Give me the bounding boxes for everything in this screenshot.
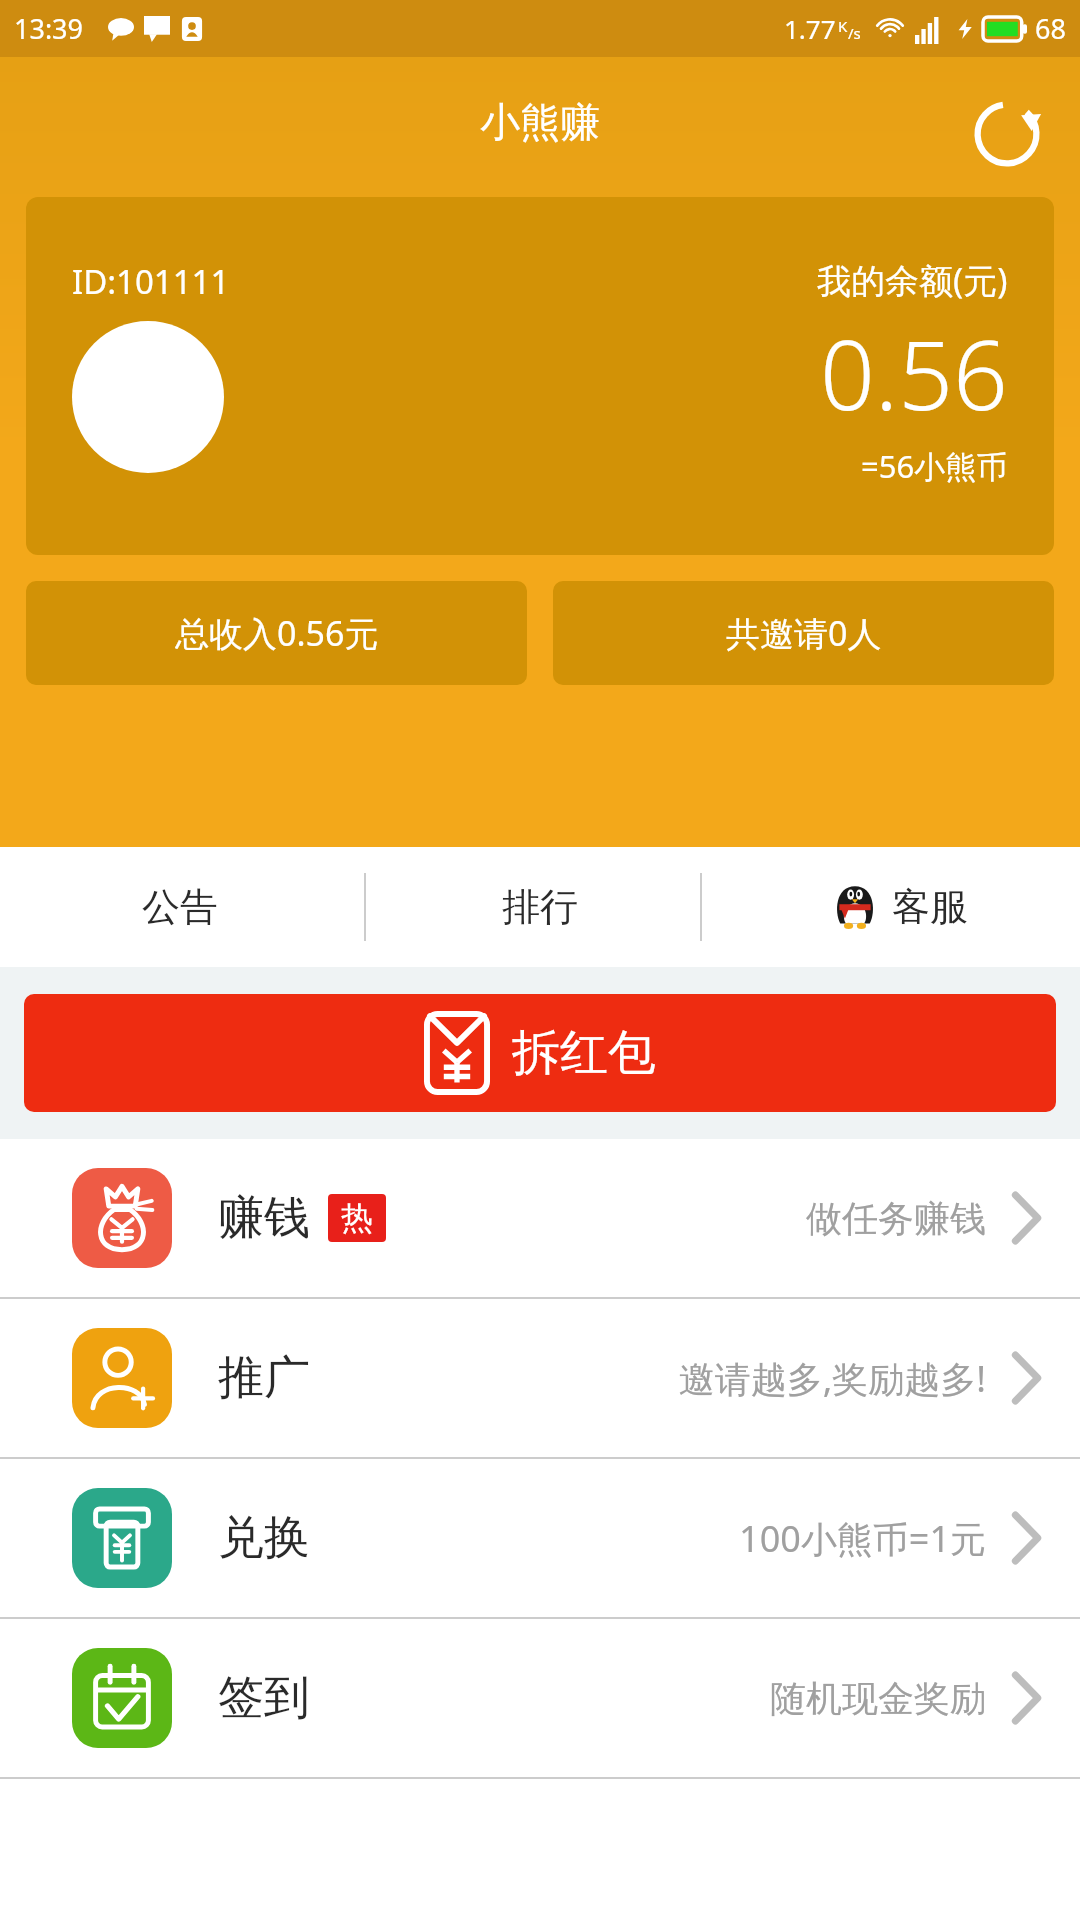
- button[interactable]: 共邀请0人: [553, 581, 1054, 685]
- staticText: 共邀请0人: [726, 610, 882, 656]
- staticText: 公告: [142, 883, 218, 931]
- staticText: 1.77: [784, 11, 836, 46]
- staticText: 兑换: [218, 1509, 310, 1567]
- staticText: 推广: [218, 1349, 310, 1407]
- staticText: 邀请越多,奖励越多!: [678, 1354, 986, 1403]
- staticText: 做任务赚钱: [806, 1196, 986, 1241]
- button[interactable]: 签到: [0, 1619, 1080, 1777]
- button[interactable]: 客服: [720, 847, 1080, 967]
- button[interactable]: 总收入0.56元: [26, 581, 527, 685]
- staticText: 签到: [218, 1669, 310, 1727]
- button[interactable]: ID:101111: [26, 197, 1054, 555]
- staticText: ID:101111: [72, 259, 230, 304]
- button[interactable]: Refresh: [968, 95, 1046, 173]
- staticText: 总收入0.56元: [175, 610, 379, 656]
- staticText: 68: [1035, 10, 1066, 47]
- button[interactable]: 排行: [360, 847, 720, 967]
- button[interactable]: 推广: [0, 1299, 1080, 1457]
- staticText: 赚钱: [218, 1189, 310, 1247]
- button[interactable]: 兑换: [0, 1459, 1080, 1617]
- staticText: =56小熊币: [861, 445, 1008, 487]
- staticText: 热: [341, 1198, 373, 1238]
- staticText: 小熊赚: [480, 97, 600, 147]
- staticText: /s: [848, 23, 861, 43]
- staticText: 0.56: [820, 307, 1008, 438]
- button[interactable]: 公告: [0, 847, 360, 967]
- staticText: 100小熊币=1元: [739, 1514, 986, 1563]
- staticText: 排行: [502, 883, 578, 931]
- staticText: K: [838, 16, 848, 36]
- staticText: 13:39: [14, 10, 84, 47]
- button[interactable]: 拆红包: [24, 994, 1056, 1112]
- staticText: 客服: [892, 883, 968, 931]
- button[interactable]: 赚钱: [0, 1139, 1080, 1297]
- staticText: 随机现金奖励: [770, 1676, 986, 1721]
- staticText: 我的余额(元): [817, 257, 1008, 303]
- staticText: 拆红包: [512, 1023, 656, 1083]
